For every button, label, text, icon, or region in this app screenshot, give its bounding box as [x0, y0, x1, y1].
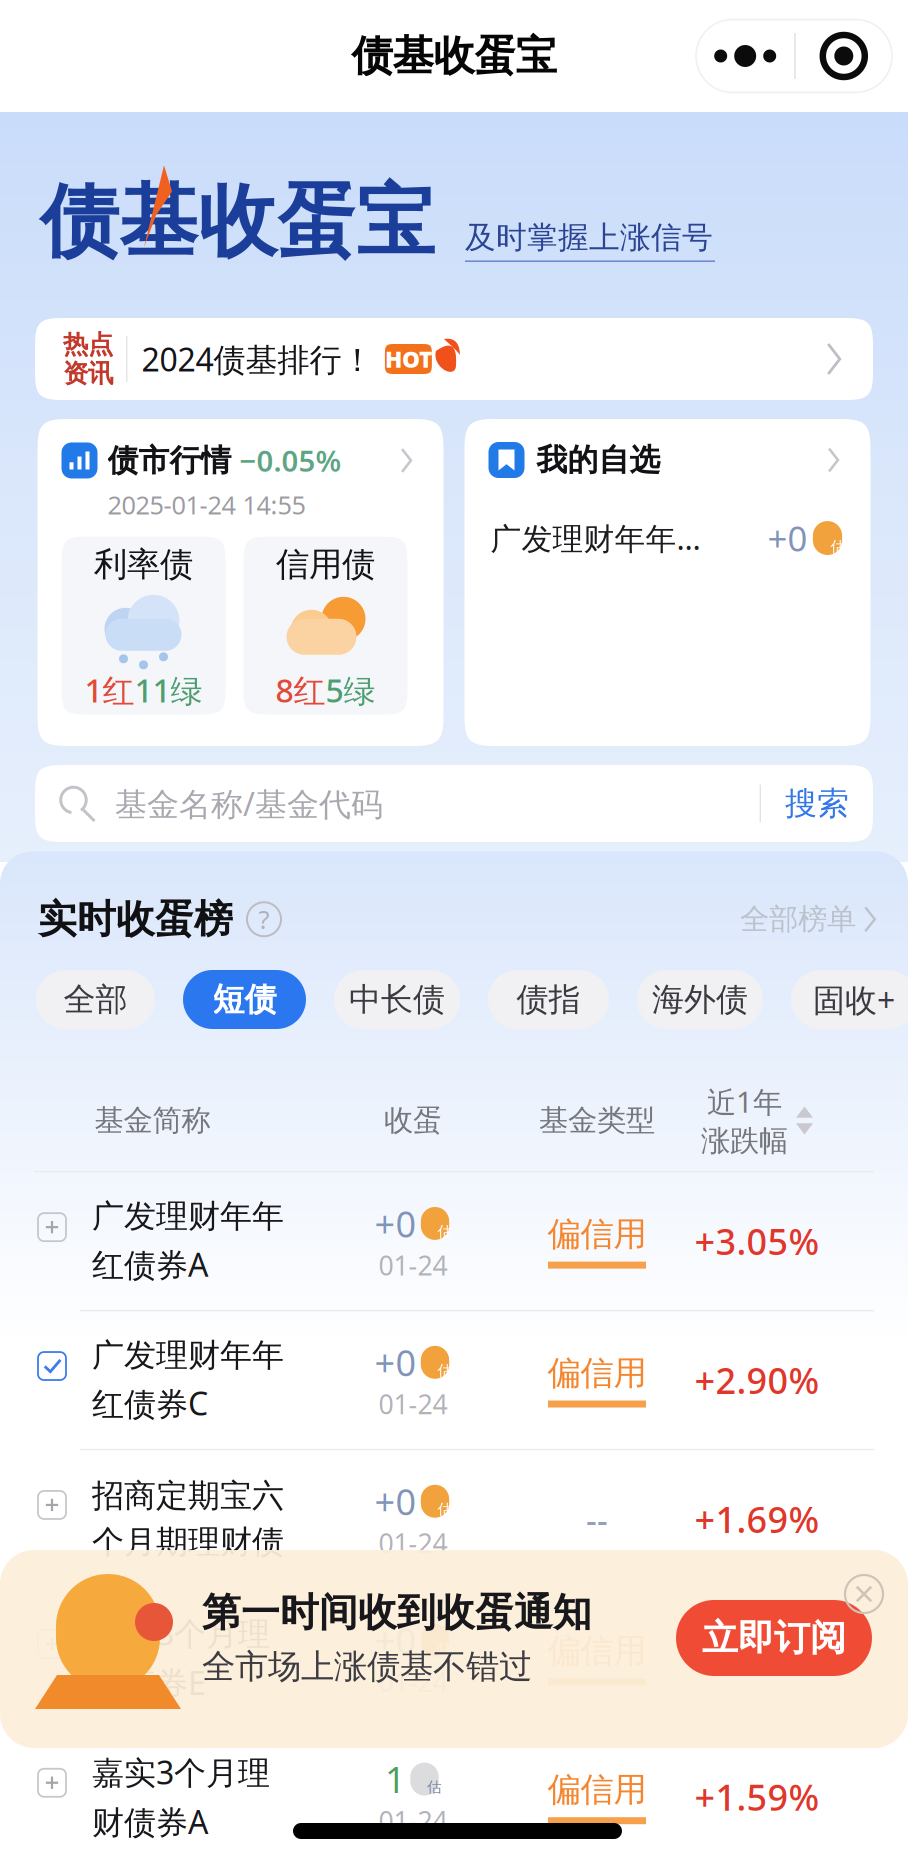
- staticText: 财债券A: [92, 1800, 208, 1843]
- staticText: 债基收蛋宝: [40, 173, 435, 270]
- staticText: +1.69%: [694, 1495, 819, 1543]
- staticText: 偏信用: [547, 1214, 646, 1255]
- staticText: 广发理财年年: [92, 1336, 284, 1375]
- button[interactable]: 广发理财年年: [0, 1311, 908, 1449]
- staticText: 红债券A: [92, 1243, 208, 1286]
- staticText: 基金类型: [539, 1102, 655, 1138]
- staticText: 海外债: [652, 980, 748, 1019]
- staticText: 广发理财年年…: [490, 518, 700, 558]
- staticText: 估: [427, 1778, 442, 1796]
- staticText: 2025-01-24 14:55: [107, 488, 305, 522]
- staticText: 全部榜单: [740, 901, 856, 937]
- staticText: 全部: [63, 980, 127, 1019]
- button[interactable]: 招商定期宝六: [0, 1450, 908, 1588]
- staticText: 财债券E: [92, 1661, 206, 1704]
- staticText: 估: [830, 538, 845, 556]
- staticText: 广发理财年年: [92, 1197, 284, 1236]
- staticText: 估: [437, 1361, 452, 1379]
- button[interactable]: 我的自选: [464, 419, 870, 746]
- staticText: 收蛋: [384, 1102, 442, 1138]
- staticText: 中长债: [349, 980, 445, 1019]
- staticText: 固收+: [813, 978, 895, 1021]
- staticText: 偏信用: [547, 1769, 646, 1810]
- staticText: 立即订阅: [702, 1616, 846, 1660]
- button[interactable]: More options: [696, 19, 892, 92]
- staticText: 热点: [63, 329, 113, 360]
- staticText: 基金简称: [94, 1102, 210, 1138]
- staticText: 8红: [275, 669, 325, 711]
- staticText: 11绿: [134, 669, 202, 711]
- staticText: 估: [437, 1500, 452, 1518]
- staticText: 红债券C: [92, 1382, 208, 1424]
- button[interactable]: 搜索: [761, 765, 873, 842]
- button[interactable]: 全部: [36, 970, 155, 1029]
- staticText: +0: [374, 1616, 416, 1664]
- staticText: 1红: [84, 669, 134, 711]
- staticText: 债市行情: [107, 442, 231, 479]
- staticText: 偏信用: [547, 1353, 646, 1393]
- staticText: +0: [374, 1477, 416, 1525]
- staticText: 我的自选: [536, 441, 660, 479]
- button[interactable]: 嘉实3个月理: [0, 1589, 908, 1727]
- staticText: 估: [437, 1639, 452, 1657]
- staticText: 偏信用: [547, 1630, 646, 1671]
- button[interactable]: 热点: [35, 318, 873, 400]
- button[interactable]: 固收+: [791, 970, 908, 1029]
- staticText: +1.52%: [694, 1634, 819, 1682]
- staticText: 资讯: [63, 358, 113, 389]
- staticText: +2.90%: [694, 1356, 819, 1404]
- staticText: 估: [437, 1223, 452, 1241]
- staticText: ?: [258, 902, 269, 936]
- button[interactable]: 债指: [488, 970, 609, 1029]
- staticText: 01-24: [378, 1803, 447, 1838]
- staticText: +0: [374, 1338, 416, 1386]
- staticText: 实时收蛋榜: [38, 895, 233, 943]
- staticText: 利率债: [94, 544, 193, 585]
- staticText: 2024债基排行！: [141, 338, 373, 380]
- staticText: 债基收蛋宝: [351, 31, 556, 81]
- staticText: 01-24: [378, 1247, 447, 1283]
- button[interactable]: 海外债: [637, 970, 763, 1029]
- staticText: 第一时间收到收蛋通知: [202, 1589, 592, 1636]
- button[interactable]: Close banner: [836, 1566, 892, 1622]
- staticText: 基金名称/基金代码: [115, 782, 383, 825]
- staticText: +3.05%: [694, 1217, 819, 1265]
- staticText: 近1年: [707, 1082, 782, 1121]
- button[interactable]: 中长债: [334, 970, 460, 1029]
- staticText: 01-24: [378, 1386, 447, 1422]
- staticText: 短债: [212, 980, 276, 1019]
- staticText: 个月期理财债: [92, 1522, 284, 1562]
- button[interactable]: 债市行情: [37, 419, 443, 746]
- staticText: 全市场上涨债基不错过: [202, 1646, 532, 1687]
- staticText: −0.05%: [239, 441, 341, 480]
- staticText: +1.59%: [694, 1773, 819, 1821]
- staticText: 信用债: [276, 544, 375, 585]
- button[interactable]: 全部榜单: [740, 899, 884, 939]
- staticText: 嘉实3个月理: [92, 1751, 270, 1793]
- button[interactable]: 立即订阅: [676, 1600, 872, 1676]
- staticText: 01-24: [378, 1525, 447, 1560]
- staticText: 搜索: [785, 784, 849, 823]
- staticText: 5绿: [325, 669, 375, 711]
- staticText: 01-24: [378, 1664, 447, 1699]
- button[interactable]: 短债: [183, 970, 306, 1029]
- staticText: 1: [385, 1755, 406, 1803]
- staticText: --: [586, 1497, 608, 1541]
- staticText: +0: [374, 1199, 416, 1247]
- staticText: 涨跌幅: [701, 1123, 788, 1159]
- staticText: +0: [767, 515, 807, 561]
- staticText: HOT: [385, 344, 432, 374]
- button[interactable]: 嘉实3个月理: [0, 1728, 908, 1855]
- staticText: 嘉实3个月理: [92, 1612, 270, 1654]
- staticText: 及时掌握上涨信号: [465, 219, 713, 256]
- staticText: 债指: [516, 980, 580, 1019]
- staticText: 招商定期宝六: [92, 1476, 284, 1515]
- button[interactable]: 广发理财年年: [0, 1172, 908, 1310]
